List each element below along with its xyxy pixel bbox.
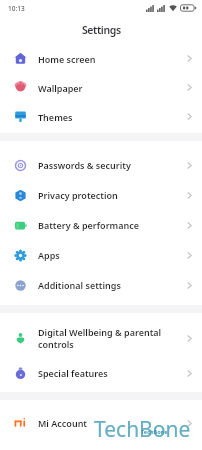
- staticText: controls: [38, 338, 74, 350]
- button[interactable]: Digital Wellbeing & parental: [0, 318, 202, 358]
- staticText: Themes: [38, 111, 73, 123]
- staticText: Mi Account: [38, 417, 88, 429]
- staticText: Settings: [82, 23, 121, 37]
- button[interactable]: Additional settings: [0, 270, 202, 300]
- button[interactable]: Home screen: [0, 44, 202, 73]
- staticText: Battery & performance: [38, 219, 140, 231]
- staticText: Home screen: [38, 53, 96, 65]
- staticText: Passwords & security: [38, 159, 131, 171]
- staticText: Privacy protection: [38, 189, 118, 201]
- staticText: Wallpaper: [38, 82, 83, 94]
- button[interactable]: Battery & performance: [0, 210, 202, 240]
- staticText: Additional settings: [38, 279, 121, 291]
- button[interactable]: Privacy protection: [0, 180, 202, 210]
- staticText: 10:13: [8, 4, 25, 13]
- button[interactable]: Passwords & security: [0, 150, 202, 180]
- button[interactable]: Mi Account: [0, 408, 202, 438]
- staticText: TechBone: [94, 415, 191, 444]
- staticText: Special features: [38, 367, 108, 379]
- button[interactable]: Themes: [0, 102, 202, 131]
- staticText: TechBone: [141, 428, 168, 435]
- button[interactable]: Apps: [0, 240, 202, 270]
- button[interactable]: Special features: [0, 358, 202, 388]
- staticText: Digital Wellbeing & parental: [38, 326, 162, 338]
- staticText: Apps: [38, 249, 60, 261]
- button[interactable]: Wallpaper: [0, 73, 202, 102]
